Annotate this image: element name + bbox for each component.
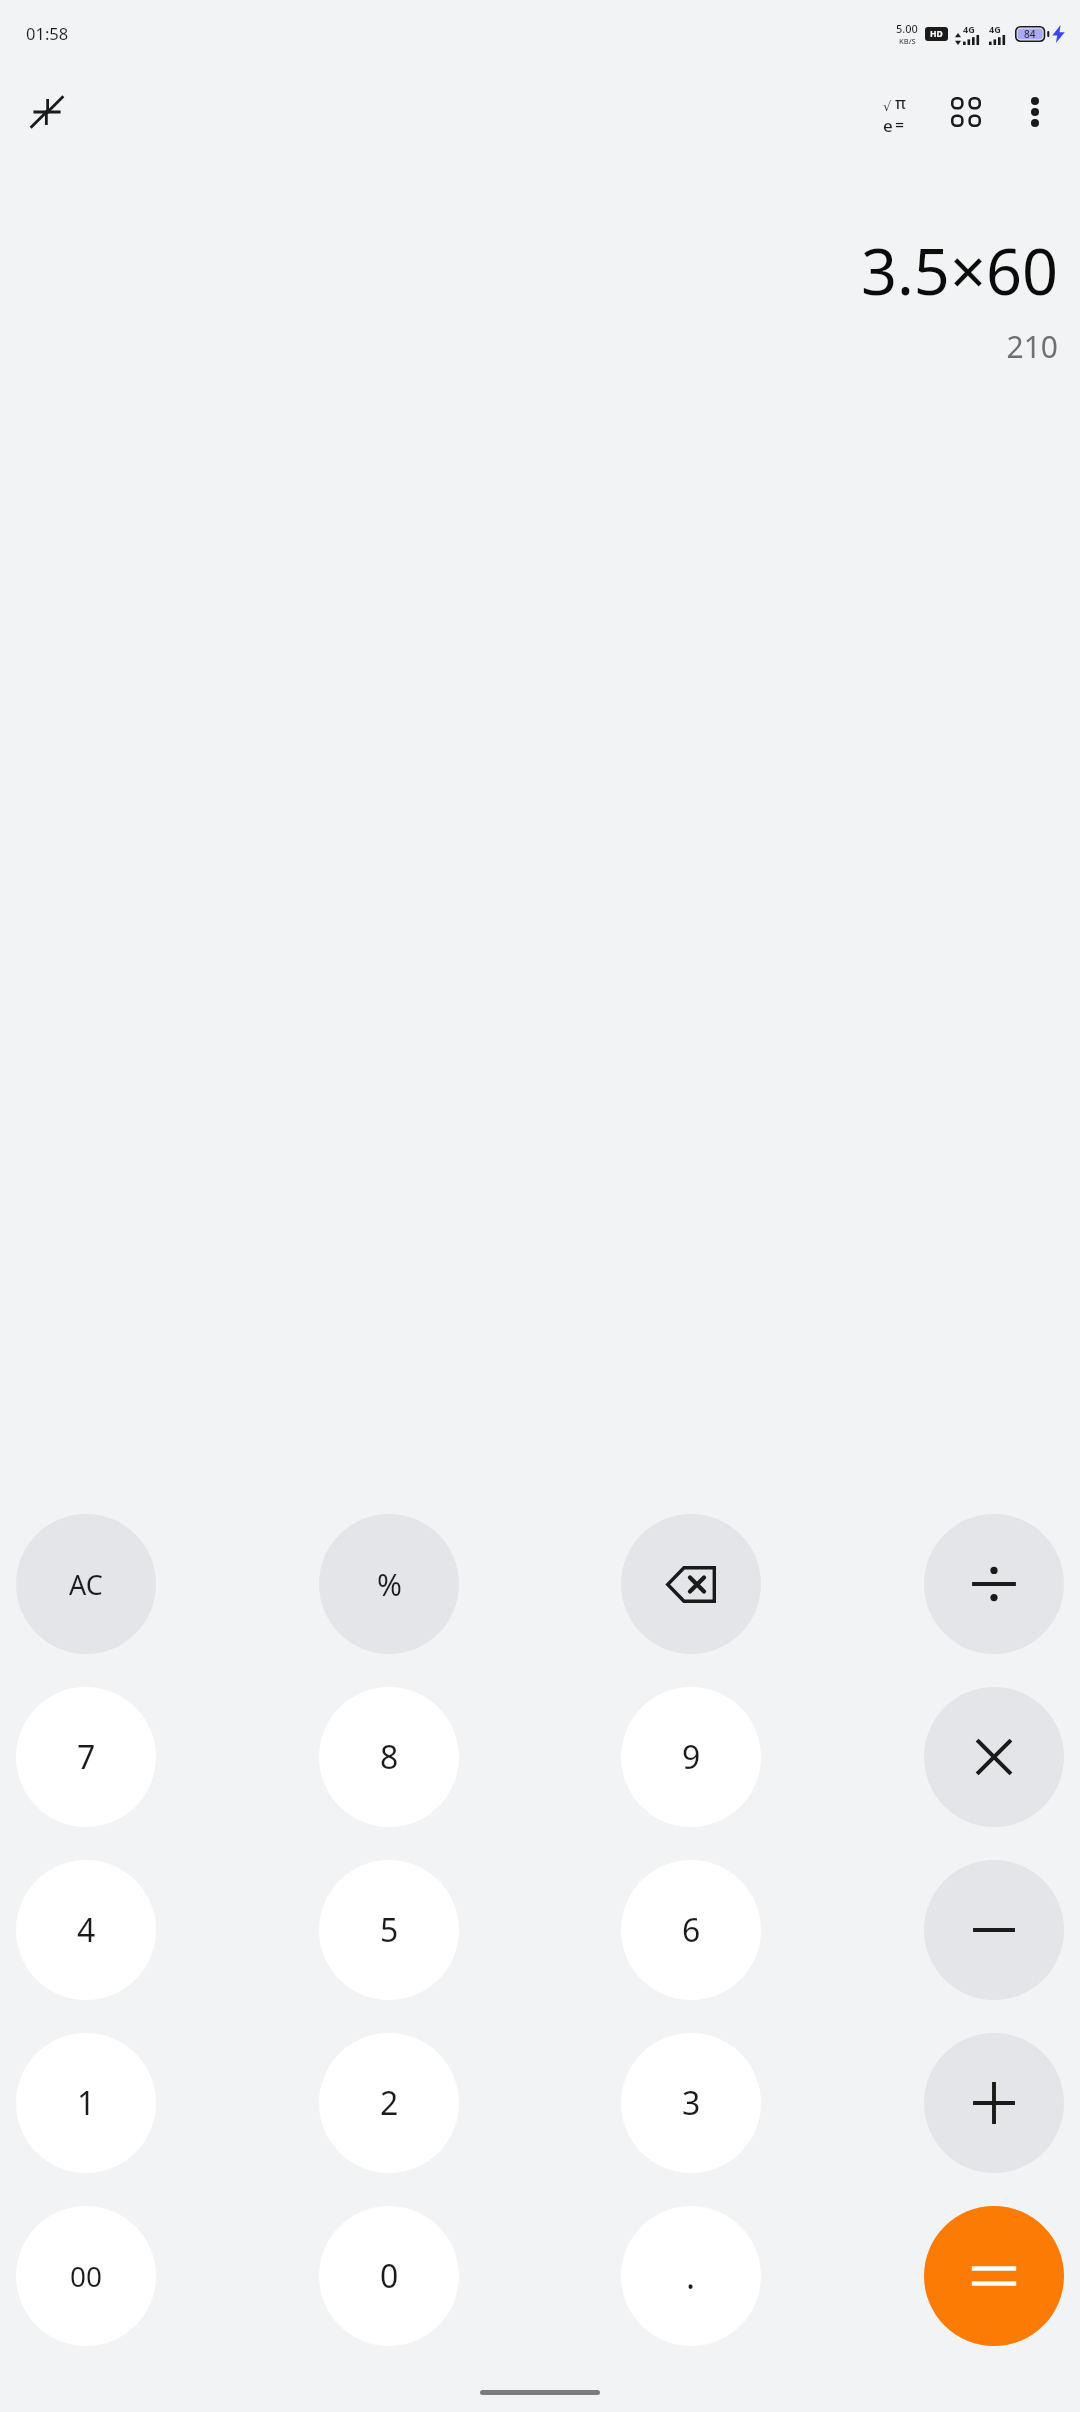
button[interactable]: Equals	[924, 2206, 1064, 2346]
staticText: 4G	[963, 23, 975, 35]
staticText: 0	[380, 2254, 399, 2298]
staticText: π	[895, 92, 906, 114]
button[interactable]: Minus	[924, 1860, 1064, 2000]
staticText: =	[895, 114, 905, 132]
button[interactable]: 8	[319, 1687, 459, 1827]
staticText: 84	[1024, 27, 1036, 41]
staticText: 7	[77, 1735, 96, 1779]
staticText: 6	[682, 1908, 701, 1952]
staticText: 01:58	[26, 22, 69, 44]
staticText: 5.00	[896, 21, 918, 36]
button[interactable]: 0	[319, 2206, 459, 2346]
staticText: 2	[380, 2081, 399, 2125]
button[interactable]: 1	[16, 2033, 156, 2173]
staticText: 9	[682, 1735, 701, 1779]
button[interactable]: 3	[621, 2033, 761, 2173]
button[interactable]: 00	[16, 2206, 156, 2346]
staticText: 1	[77, 2081, 96, 2125]
staticText: .	[686, 2253, 696, 2299]
button[interactable]: 4	[16, 1860, 156, 2000]
button[interactable]: 9	[621, 1687, 761, 1827]
button[interactable]: 7	[16, 1687, 156, 1827]
staticText: AC	[69, 1566, 103, 1603]
button[interactable]: 6	[621, 1860, 761, 2000]
staticText: 3.5×60	[860, 228, 1058, 314]
staticText: HD	[930, 28, 943, 40]
button[interactable]: AC	[16, 1514, 156, 1654]
button[interactable]: Collapse	[18, 83, 76, 141]
staticText: KB/S	[899, 36, 916, 46]
staticText: 5	[380, 1908, 399, 1952]
staticText: 4G	[989, 23, 1001, 35]
button[interactable]: Converter	[936, 82, 996, 142]
button[interactable]: %	[319, 1514, 459, 1654]
staticText: 210	[1006, 326, 1058, 367]
button[interactable]: .	[621, 2206, 761, 2346]
staticText: 00	[70, 2257, 103, 2295]
button[interactable]: Plus	[924, 2033, 1064, 2173]
staticText: %	[377, 1564, 402, 1605]
button[interactable]: Multiply	[924, 1687, 1064, 1827]
button[interactable]: Backspace	[621, 1514, 761, 1654]
button[interactable]: Scientific mode	[864, 82, 924, 142]
staticText: e	[883, 114, 893, 132]
button[interactable]: 5	[319, 1860, 459, 2000]
staticText: √	[883, 99, 892, 114]
staticText: 4	[77, 1908, 96, 1952]
staticText: 8	[380, 1735, 399, 1779]
button[interactable]: 2	[319, 2033, 459, 2173]
button[interactable]: More options	[1006, 83, 1064, 141]
button[interactable]: Divide	[924, 1514, 1064, 1654]
staticText: 3	[682, 2081, 701, 2125]
